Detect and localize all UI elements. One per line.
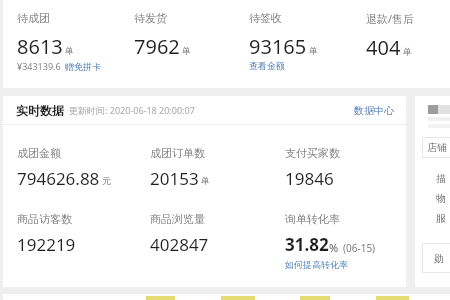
staticText: %	[329, 240, 339, 255]
staticText: 服	[436, 212, 446, 225]
staticText: 19846	[285, 167, 334, 190]
staticText: ¥343139.6	[17, 60, 61, 72]
staticText: 成团金额	[17, 146, 61, 160]
staticText: 404	[366, 34, 401, 61]
staticText: 更新时间: 2020-06-18 20:00:07	[69, 104, 195, 116]
staticText: 7962	[134, 33, 180, 60]
button[interactable]: 店铺	[422, 137, 450, 158]
staticText: 93165	[249, 33, 307, 60]
staticText: 31.82	[285, 233, 329, 256]
staticText: 20153	[150, 167, 199, 190]
staticText: 单	[182, 45, 191, 56]
staticText: 192219	[17, 233, 76, 256]
staticText: 元	[102, 175, 111, 186]
staticText: 待签收	[249, 11, 282, 25]
staticText: 单	[201, 175, 210, 186]
staticText: 单	[309, 45, 318, 56]
staticText: 待发货	[134, 11, 167, 25]
staticText: (06-15)	[343, 241, 376, 255]
staticText: 实时数据	[16, 103, 64, 118]
staticText: 描	[436, 172, 446, 185]
staticText: 询单转化率	[285, 212, 340, 226]
staticText: 物	[436, 192, 446, 205]
button[interactable]: 数据中心	[354, 104, 394, 117]
staticText: 单	[403, 46, 412, 57]
button[interactable]: 如何提高转化率	[285, 259, 348, 270]
button[interactable]: 查看金额	[249, 60, 285, 71]
staticText: 商品浏览量	[150, 212, 205, 226]
staticText: 支付买家数	[285, 146, 340, 160]
staticText: 8613	[17, 33, 63, 60]
staticText: 勋	[434, 252, 444, 265]
staticText: 商品访客数	[17, 212, 72, 226]
staticText: 402847	[150, 233, 209, 256]
button[interactable]: 勋	[422, 243, 450, 273]
staticText: 店铺	[427, 141, 447, 154]
staticText: 待成团	[17, 11, 50, 25]
staticText: 成团订单数	[150, 146, 205, 160]
staticText: 794626.88	[17, 167, 100, 190]
button[interactable]: 赠免拼卡	[65, 61, 101, 72]
staticText: 退款/售后	[366, 11, 415, 26]
staticText: 单	[65, 45, 74, 56]
